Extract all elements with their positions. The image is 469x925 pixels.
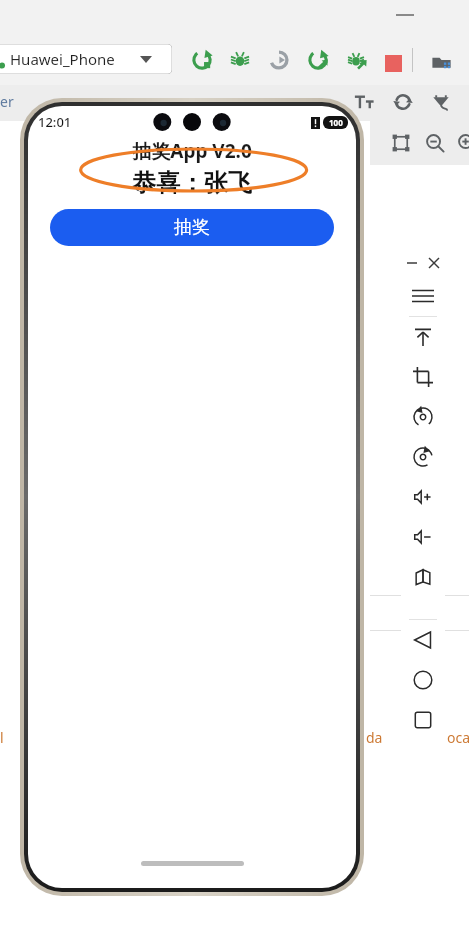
button[interactable]: Close <box>423 250 445 276</box>
button[interactable]: Menu <box>401 276 445 316</box>
button[interactable]: Power <box>429 90 453 114</box>
button[interactable]: Reload <box>391 90 415 114</box>
button[interactable]: Rotate right <box>401 437 445 477</box>
button[interactable]: Screenshot <box>401 357 445 397</box>
button[interactable]: Back <box>401 620 445 660</box>
button[interactable]: Zoom in <box>455 131 469 155</box>
button[interactable]: Device manager <box>430 50 454 74</box>
staticText: 100 <box>329 117 343 128</box>
staticText: Huawei_Phone <box>10 49 115 69</box>
button[interactable]: Huawei_Phone <box>0 44 172 74</box>
button[interactable]: Run <box>190 48 214 72</box>
button[interactable]: Minimize <box>401 250 423 276</box>
button[interactable]: Home <box>401 660 445 700</box>
button[interactable]: Select <box>389 131 413 155</box>
staticText: 抽奖 <box>174 216 210 239</box>
button[interactable]: Fold <box>401 557 445 597</box>
staticText: 抽奖App V2.0 <box>132 138 252 164</box>
button[interactable]: Font size <box>352 90 376 114</box>
button[interactable]: Attach debugger <box>344 48 368 72</box>
staticText: 12:01 <box>38 113 72 131</box>
button[interactable]: Zoom out <box>423 131 447 155</box>
button[interactable]: Rotate left <box>401 397 445 437</box>
staticText: da <box>366 728 383 747</box>
staticText: l <box>0 728 4 747</box>
button[interactable]: Rerun <box>306 48 330 72</box>
button[interactable]: Volume up <box>401 477 445 517</box>
staticText: er <box>0 92 14 111</box>
button[interactable]: Profile <box>267 48 291 72</box>
button[interactable]: Power <box>401 317 445 357</box>
staticText: 恭喜：张飞 <box>132 168 252 198</box>
staticText: oca <box>447 728 469 747</box>
button[interactable]: Debug <box>228 48 252 72</box>
button[interactable]: Overview <box>401 700 445 740</box>
button[interactable]: 抽奖 <box>50 209 334 246</box>
button[interactable]: Volume down <box>401 517 445 557</box>
